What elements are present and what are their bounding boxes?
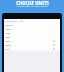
staticText: CHOOSE UNITS [16, 0, 49, 6]
staticText: Temp [5, 40, 10, 43]
button[interactable]: Height [4, 31, 60, 35]
button[interactable]: Temp [4, 39, 60, 43]
staticText: Energy [5, 44, 12, 47]
staticText: Distance [5, 24, 13, 27]
button[interactable]: Energy [4, 43, 60, 47]
button[interactable]: Weight [4, 27, 60, 31]
button[interactable]: Distance [4, 23, 60, 27]
staticText: Weight [5, 28, 12, 31]
button[interactable]: Pace [4, 47, 60, 51]
staticText: Pace [5, 48, 10, 51]
button[interactable]: Speed [4, 35, 60, 39]
staticText: Height [5, 32, 11, 35]
staticText: edit [20, 20, 24, 23]
staticText: Choose units for your activities [17, 5, 48, 8]
staticText: Choose units [5, 20, 18, 23]
staticText: Speed [5, 36, 11, 39]
